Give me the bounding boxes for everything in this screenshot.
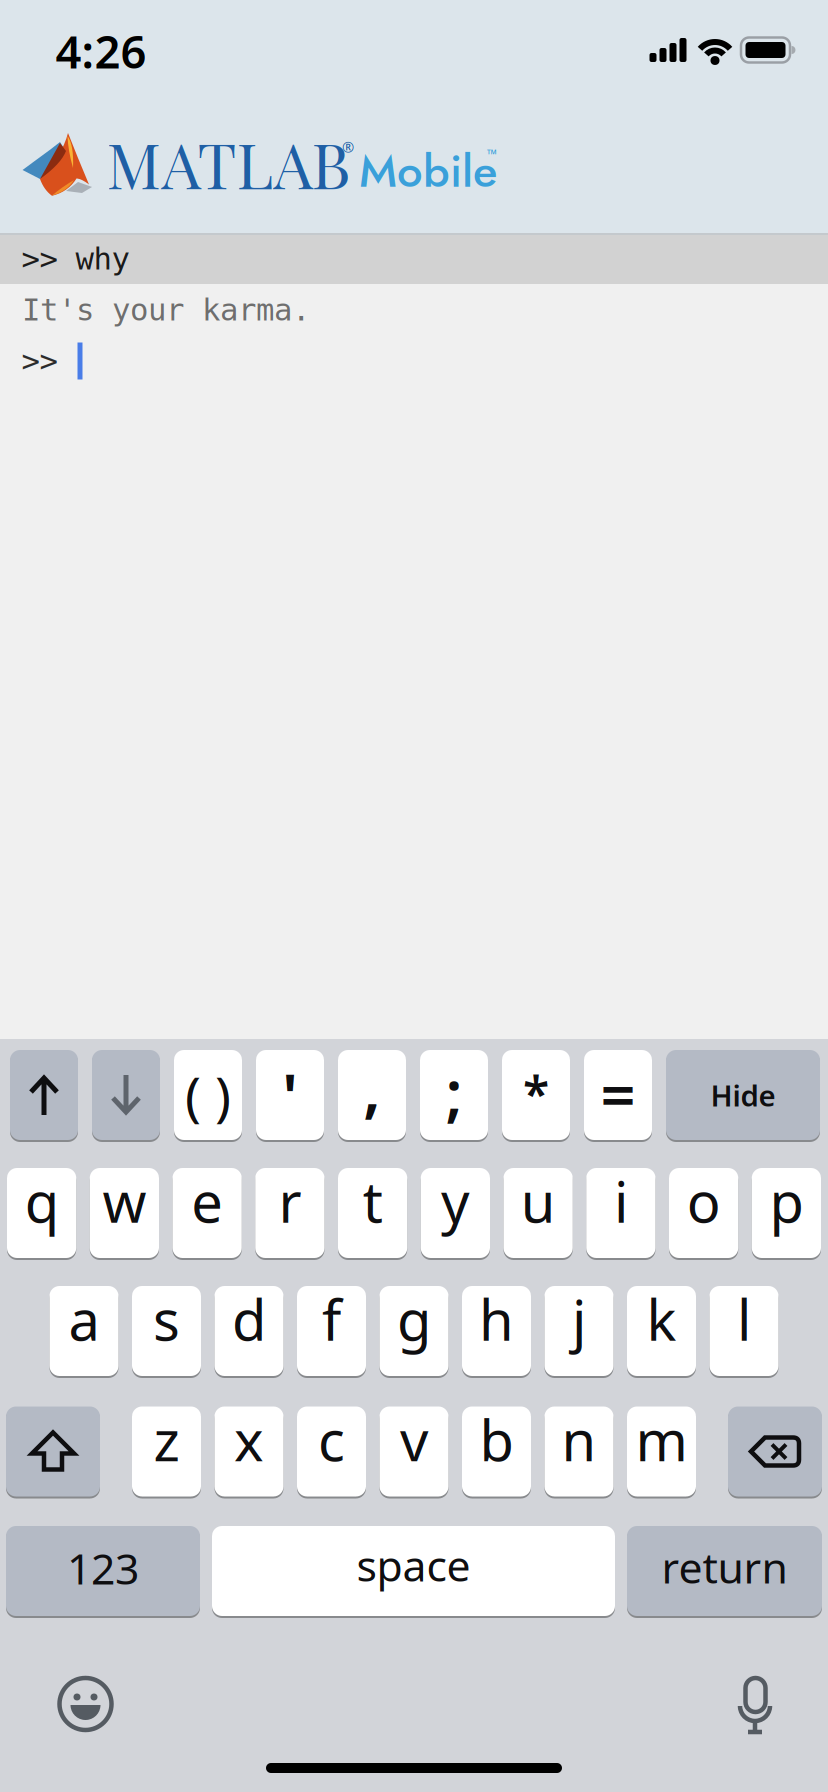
staticText: k [646,1282,676,1356]
staticText: Mobile [359,138,497,204]
staticText: f [322,1282,341,1356]
staticText: y [441,1164,470,1238]
staticText: g [397,1282,431,1356]
staticText: It's your karma. [22,293,310,327]
staticText: MATLAB [106,121,350,205]
staticText: 4:26 [55,21,146,81]
staticText: b [479,1402,513,1477]
staticText: ( ) [185,1060,231,1130]
staticText: ; [445,1050,462,1132]
staticText: e [191,1164,223,1238]
staticText: = [600,1053,635,1135]
staticText: o [687,1164,721,1238]
staticText: >> [21,344,57,378]
staticText: ™ [487,145,497,163]
staticText: c [318,1402,345,1477]
staticText: ' [282,1052,298,1137]
staticText: u [521,1164,556,1238]
staticText: p [769,1164,803,1238]
staticText: q [25,1164,59,1238]
staticText: 123 [67,1540,139,1596]
staticText: x [234,1402,264,1477]
staticText: r [278,1164,301,1238]
staticText: * [523,1061,549,1125]
staticText: l [737,1282,751,1356]
staticText: ® [342,137,354,157]
staticText: i [614,1164,628,1238]
staticText: space [356,1537,470,1593]
staticText: s [153,1282,180,1356]
staticText: Hide [710,1075,775,1114]
staticText: m [635,1402,687,1477]
staticText: , [363,1044,381,1129]
staticText: v [400,1402,428,1477]
staticText: n [561,1402,596,1477]
staticText: w [102,1164,146,1238]
staticText: return [661,1539,787,1595]
staticText: t [363,1164,383,1238]
staticText: >> why [21,242,129,276]
staticText: j [572,1282,586,1356]
staticText: a [68,1282,99,1356]
staticText: z [153,1402,179,1477]
staticText: h [479,1282,514,1356]
staticText: d [232,1282,266,1356]
